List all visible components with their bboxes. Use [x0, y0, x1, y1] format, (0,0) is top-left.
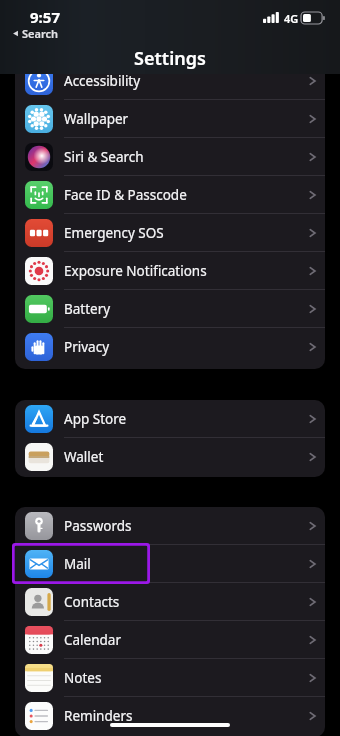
staticText: Contacts: [64, 593, 120, 611]
button[interactable]: Search: [10, 25, 61, 42]
staticText: Search: [22, 26, 59, 41]
button[interactable]: Passwords: [15, 507, 325, 545]
staticText: Privacy: [64, 338, 110, 356]
button[interactable]: Mail: [15, 545, 325, 583]
button[interactable]: Privacy: [15, 328, 325, 366]
button[interactable]: Siri & Search: [15, 138, 325, 176]
staticText: Settings: [134, 46, 206, 71]
staticText: 4G: [284, 11, 299, 26]
button[interactable]: Calendar: [15, 621, 325, 659]
staticText: Calendar: [64, 631, 121, 649]
staticText: Passwords: [64, 517, 132, 535]
button[interactable]: Emergency SOS: [15, 214, 325, 252]
button[interactable]: Wallpaper: [15, 100, 325, 138]
button[interactable]: Exposure Notifications: [15, 252, 325, 290]
button[interactable]: App Store: [15, 400, 325, 438]
staticText: Wallet: [64, 448, 104, 466]
staticText: Reminders: [64, 707, 133, 725]
staticText: Siri & Search: [64, 148, 144, 166]
staticText: Notes: [64, 669, 102, 687]
staticText: Face ID & Passcode: [64, 186, 187, 204]
staticText: Emergency SOS: [64, 224, 164, 242]
staticText: 9:57: [30, 7, 60, 27]
staticText: App Store: [64, 410, 127, 428]
button[interactable]: Accessibility: [15, 62, 325, 100]
staticText: Mail: [64, 555, 91, 573]
staticText: Exposure Notifications: [64, 262, 207, 280]
button[interactable]: Contacts: [15, 583, 325, 621]
button[interactable]: Battery: [15, 290, 325, 328]
button[interactable]: Face ID & Passcode: [15, 176, 325, 214]
button[interactable]: Reminders: [15, 697, 325, 735]
staticText: Battery: [64, 300, 111, 318]
staticText: Accessibility: [64, 72, 141, 90]
button[interactable]: Notes: [15, 659, 325, 697]
staticText: Wallpaper: [64, 110, 129, 128]
button[interactable]: Wallet: [15, 438, 325, 476]
